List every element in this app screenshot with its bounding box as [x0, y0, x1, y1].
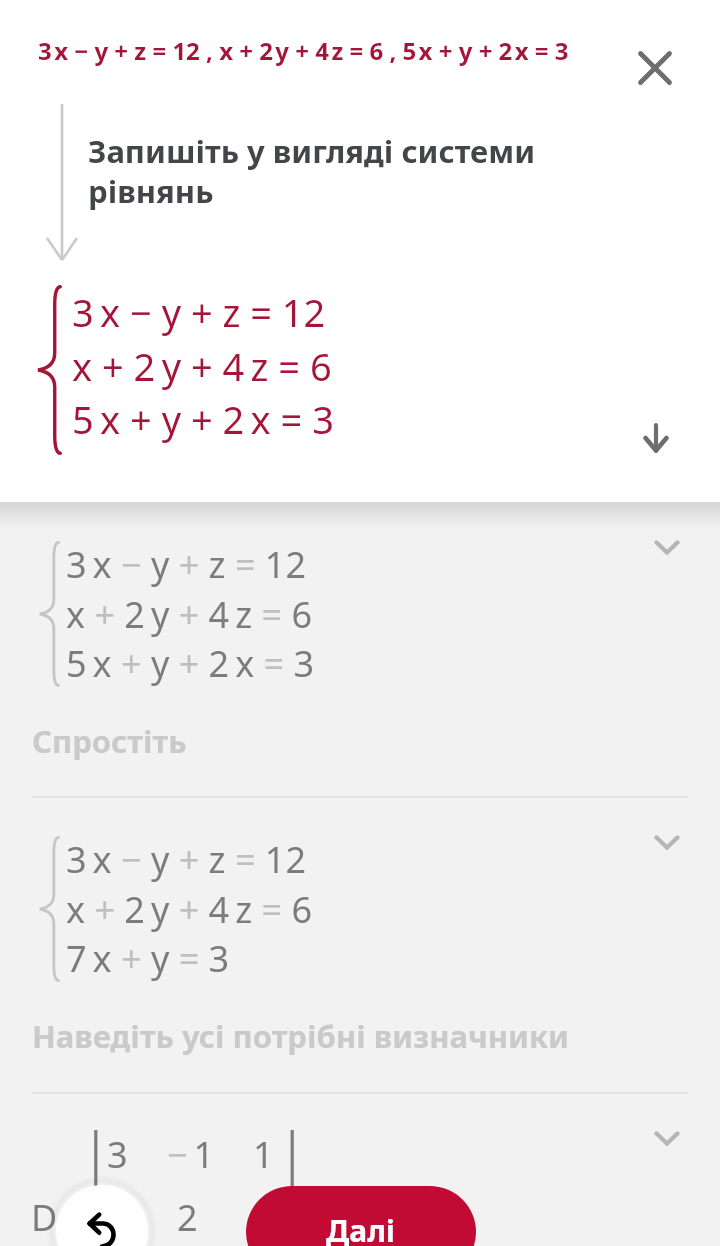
button[interactable]: 3 x − y + z = 12: [0, 502, 720, 802]
button[interactable]: Undo: [56, 1185, 148, 1246]
staticText: 3 x − y + z = 12 , x + 2 y + 4 z = 6 , 5…: [38, 34, 569, 67]
staticText: 3: [107, 1130, 128, 1179]
staticText: 3 x − y + z = 12: [66, 835, 307, 884]
staticText: x + 2 y + 4 z = 6: [72, 340, 332, 392]
staticText: 5 x + y + 2 x = 3: [66, 639, 315, 688]
button[interactable]: Expand step: [639, 814, 695, 870]
staticText: 5 x + y + 2 x = 3: [72, 393, 334, 445]
staticText: Спростіть: [32, 720, 187, 762]
staticText: x + 2 y + 4 z = 6: [66, 885, 312, 934]
staticText: 2: [177, 1193, 198, 1242]
staticText: Далі: [326, 1210, 396, 1246]
button[interactable]: Expand step: [639, 1110, 695, 1166]
button[interactable]: 3 x − y + z = 12: [0, 797, 720, 1097]
staticText: D: [31, 1193, 58, 1242]
staticText: − 1: [167, 1130, 215, 1179]
staticText: Запишіть у вигляді системи рівнянь: [88, 130, 536, 212]
button[interactable]: Close: [625, 38, 685, 98]
staticText: 7 x + y = 3: [66, 934, 230, 983]
staticText: 1: [253, 1130, 274, 1179]
staticText: Наведіть усі потрібні визначники: [32, 1015, 569, 1057]
button[interactable]: Expand step: [0, 1094, 720, 1246]
staticText: x + 2 y + 4 z = 6: [66, 590, 312, 639]
button[interactable]: Expand step: [639, 519, 695, 575]
button[interactable]: Download: [628, 410, 684, 466]
button[interactable]: Далі: [246, 1186, 476, 1246]
staticText: 3 x − y + z = 12: [66, 540, 307, 589]
staticText: 3 x − y + z = 12: [72, 286, 326, 338]
